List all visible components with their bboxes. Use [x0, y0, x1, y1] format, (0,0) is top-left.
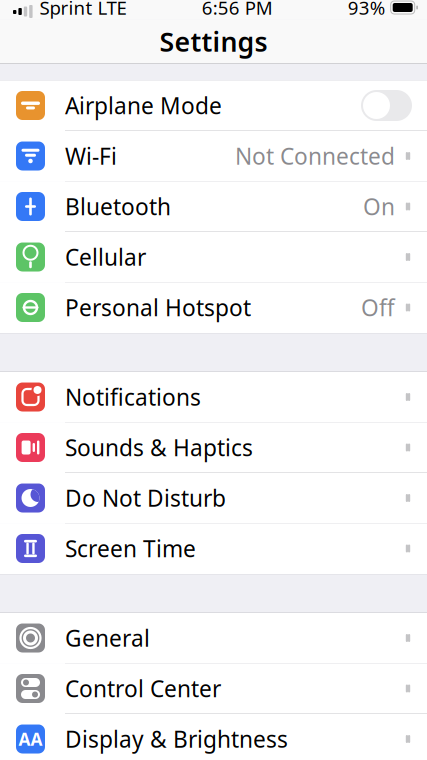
- staticText: Control Center: [65, 673, 221, 703]
- button[interactable]: General: [0, 613, 427, 663]
- button[interactable]: Control Center: [0, 663, 427, 714]
- staticText: Display & Brightness: [65, 724, 288, 754]
- staticText: Wi-Fi: [65, 141, 117, 171]
- staticText: 93%: [348, 0, 386, 20]
- button[interactable]: Screen Time: [0, 523, 427, 574]
- staticText: Airplane Mode: [65, 90, 222, 120]
- button[interactable]: Airplane Mode: [0, 80, 427, 131]
- staticText: Do Not Disturb: [65, 483, 226, 513]
- staticText: Notifications: [65, 382, 201, 412]
- button[interactable]: Do Not Disturb: [0, 473, 427, 523]
- staticText: Not Connected: [235, 141, 395, 171]
- staticText: Sounds & Haptics: [65, 432, 253, 462]
- staticText: On: [363, 191, 395, 221]
- button[interactable]: Bluetooth: [0, 181, 427, 232]
- staticText: Off: [361, 292, 395, 322]
- button[interactable]: Sounds & Haptics: [0, 422, 427, 473]
- staticText: AA: [18, 727, 42, 750]
- button[interactable]: AA: [0, 714, 427, 760]
- staticText: Bluetooth: [65, 191, 171, 221]
- staticText: Cellular: [65, 242, 146, 272]
- button[interactable]: Notifications: [0, 372, 427, 422]
- staticText: 6:56 PM: [202, 0, 273, 20]
- button[interactable]: Cellular: [0, 232, 427, 282]
- staticText: Sprint LTE: [40, 0, 127, 20]
- staticText: Screen Time: [65, 533, 196, 563]
- button[interactable]: Personal Hotspot: [0, 282, 427, 333]
- staticText: Personal Hotspot: [65, 292, 251, 322]
- staticText: General: [65, 623, 150, 653]
- button[interactable]: Wi-Fi: [0, 131, 427, 181]
- staticText: Settings: [159, 24, 267, 59]
